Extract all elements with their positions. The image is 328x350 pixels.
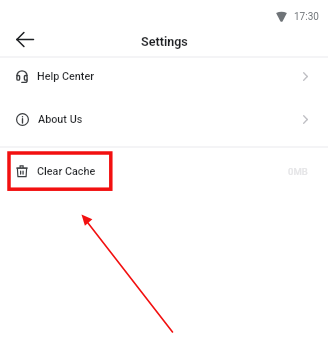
staticText: 17:30: [294, 11, 319, 23]
button[interactable]: About Us: [0, 101, 328, 137]
button[interactable]: Clear Cache: [0, 153, 328, 189]
staticText: Settings: [141, 34, 188, 49]
staticText: Clear Cache: [37, 165, 96, 178]
staticText: Help Center: [37, 70, 94, 83]
button[interactable]: Help Center: [0, 58, 328, 94]
button[interactable]: Back: [10, 24, 40, 54]
staticText: About Us: [38, 113, 83, 126]
staticText: 0MB: [288, 166, 308, 177]
